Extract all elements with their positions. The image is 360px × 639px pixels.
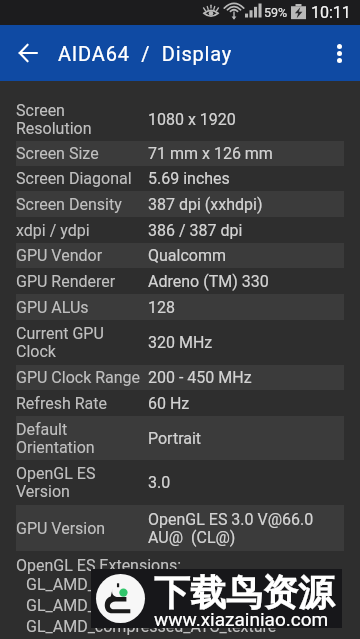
staticText: 1080 x 1920 — [148, 110, 236, 129]
button[interactable]: Screen Resolution — [16, 97, 344, 141]
staticText: 200 - 450 MHz — [148, 368, 252, 387]
staticText: 59% — [264, 5, 288, 20]
staticText: 下载鸟资源 — [154, 570, 334, 615]
staticText: GPU ALUs — [16, 298, 148, 317]
button[interactable]: Screen Size — [16, 141, 344, 166]
staticText: 10:11 — [311, 3, 351, 22]
staticText: GPU Renderer — [16, 272, 148, 291]
staticText: 71 mm x 126 mm — [148, 144, 273, 163]
staticText: 128 — [148, 298, 175, 317]
staticText: GL_AMD_compressed_ATC_texture — [26, 617, 277, 636]
staticText: Adreno (TM) 330 — [148, 272, 269, 291]
button[interactable]: GPU ALUs — [16, 294, 344, 320]
staticText: GPU Vendor — [16, 246, 148, 265]
button[interactable]: GPU Version — [16, 505, 344, 551]
staticText: Screen Diagonal — [16, 169, 148, 188]
staticText: GL_AMD_compressed_ATC_texture — [26, 575, 277, 594]
button[interactable]: OpenGL ES Version — [16, 460, 344, 505]
button[interactable]: Refresh Rate — [16, 390, 344, 416]
staticText: Screen Size — [16, 144, 148, 163]
button[interactable]: GPU Renderer — [16, 268, 344, 294]
staticText: GL_AMD_compressed_ATC_texture — [26, 596, 277, 615]
button[interactable]: Default Orientation — [16, 416, 344, 460]
staticText: 387 dpi (xxhdpi) — [148, 195, 263, 214]
button[interactable]: xdpi / ydpi — [16, 217, 344, 243]
staticText: OpenGL ES Extensions: — [16, 556, 182, 575]
staticText: OpenGL ES Version — [16, 464, 148, 501]
staticText: Refresh Rate — [16, 394, 148, 413]
button[interactable]: Current GPU Clock — [16, 320, 344, 365]
staticText: Screen Resolution — [16, 101, 148, 138]
staticText: 5.69 inches — [148, 169, 230, 188]
staticText: AIDA64 / Display — [58, 42, 233, 65]
staticText: Current GPU Clock — [16, 324, 148, 361]
staticText: Qualcomm — [148, 246, 226, 265]
staticText: GPU Version — [16, 519, 148, 538]
staticText: 3.0 — [148, 473, 171, 492]
staticText: Default Orientation — [16, 420, 148, 457]
button[interactable]: Screen Diagonal — [16, 166, 344, 191]
staticText: www.xiazainiao.com — [154, 608, 329, 630]
button[interactable]: More options — [318, 25, 360, 81]
staticText: OpenGL ES 3.0 V@66.0 AU@ (CL@) — [148, 510, 314, 547]
staticText: Screen Density — [16, 195, 148, 214]
staticText: 320 MHz — [148, 333, 213, 352]
staticText: xdpi / ydpi — [16, 221, 148, 240]
staticText: GPU Clock Range — [16, 368, 148, 387]
button[interactable]: Screen Density — [16, 191, 344, 217]
button[interactable]: GPU Clock Range — [16, 365, 344, 390]
staticText: 60 Hz — [148, 394, 190, 413]
button[interactable]: GPU Vendor — [16, 243, 344, 268]
staticText: Portrait — [148, 429, 202, 448]
button[interactable]: Back — [10, 25, 46, 81]
staticText: 386 / 387 dpi — [148, 221, 243, 240]
